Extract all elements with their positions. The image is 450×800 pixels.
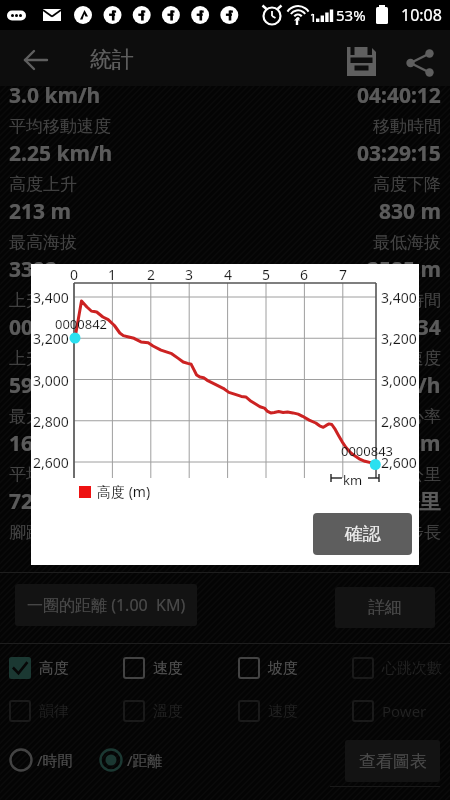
staticText: 02:13:34: [357, 313, 441, 342]
staticText: 59 m/h: [9, 371, 82, 400]
staticText: 查看圖表: [359, 751, 427, 772]
staticText: 平均移動速度: [9, 116, 111, 137]
staticText: 7.86 公里: [351, 487, 441, 516]
button[interactable]: 速度: [238, 700, 352, 722]
staticText: 詳細: [368, 597, 402, 618]
staticText: 10:08: [401, 4, 442, 26]
staticText: 最高海拔: [9, 232, 77, 253]
staticText: 2: [147, 265, 156, 284]
staticText: 韻律: [39, 702, 69, 721]
staticText: 5: [262, 265, 271, 284]
staticText: 00:41:20: [9, 313, 93, 342]
staticText: 平均步頻: [9, 464, 77, 485]
button[interactable]: Back: [14, 38, 58, 82]
staticText: 坡度: [268, 659, 298, 678]
staticText: 統計: [90, 46, 134, 74]
button[interactable]: Share: [398, 41, 442, 85]
staticText: 213 m: [9, 197, 71, 226]
staticText: 總公里: [390, 464, 441, 485]
staticText: 確認: [345, 523, 381, 546]
staticText: 121 bpm: [352, 429, 441, 458]
staticText: 6: [300, 265, 309, 284]
staticText: 0000843: [341, 442, 394, 460]
staticText: 上升速度: [9, 348, 77, 369]
button[interactable]: 速度: [123, 657, 238, 679]
staticText: 7: [339, 265, 348, 284]
staticText: 3,200: [381, 329, 417, 348]
staticText: 2585 m: [367, 255, 441, 284]
staticText: 10:08: [401, 4, 442, 26]
staticText: 高度: [39, 659, 69, 678]
staticText: 2,600: [33, 453, 69, 472]
staticText: 2.25 km/h: [9, 139, 113, 168]
button[interactable]: 確認: [313, 513, 412, 555]
staticText: 3,000: [33, 371, 69, 390]
staticText: 移動時間: [373, 116, 441, 137]
button[interactable]: 心跳次數: [352, 657, 450, 679]
button[interactable]: /時間: [9, 748, 73, 772]
staticText: 速度: [153, 659, 183, 678]
staticText: /時間: [37, 750, 73, 770]
staticText: 4: [224, 265, 233, 284]
staticText: 3,400: [381, 288, 417, 307]
button[interactable]: Power: [352, 700, 450, 722]
staticText: 一圈的距離 (1.00 KM): [27, 594, 186, 616]
button[interactable]: 查看圖表: [345, 740, 440, 782]
button[interactable]: 一圈的距離 (1.00 KM): [15, 584, 197, 626]
staticText: 3.0 km/h: [9, 86, 101, 110]
staticText: /距離: [127, 750, 163, 770]
button[interactable]: /距離: [99, 748, 163, 772]
button[interactable]: 韻律: [9, 700, 123, 722]
staticText: 390 m/h: [356, 371, 441, 400]
staticText: 腳踏頻率: [9, 522, 77, 543]
staticText: km: [343, 471, 363, 489]
staticText: 2,600: [381, 453, 417, 472]
staticText: 高度上升: [9, 174, 77, 195]
staticText: 0: [70, 265, 79, 284]
button[interactable]: 高度: [9, 657, 123, 679]
staticText: 高度 (m): [97, 482, 151, 501]
button[interactable]: Save: [339, 39, 383, 83]
staticText: 高度下降: [373, 174, 441, 195]
staticText: 最大心率: [9, 406, 77, 427]
staticText: 163 bpm: [9, 429, 98, 458]
staticText: 04:40:12: [357, 86, 441, 110]
button[interactable]: 詳細: [335, 587, 435, 628]
staticText: 1: [108, 265, 117, 284]
staticText: 3: [185, 265, 194, 284]
staticText: 53%: [336, 5, 366, 25]
staticText: Power: [382, 701, 427, 721]
staticText: 53%: [336, 5, 366, 25]
staticText: 平均步長: [373, 522, 441, 543]
staticText: 最低海拔: [373, 232, 441, 253]
button[interactable]: 坡度: [238, 657, 352, 679]
staticText: 830 m: [379, 197, 441, 226]
button[interactable]: 溫度: [123, 700, 238, 722]
staticText: 3,200: [33, 329, 69, 348]
staticText: 03:29:15: [357, 139, 441, 168]
staticText: 溫度: [153, 702, 183, 721]
staticText: 上升時間: [9, 290, 77, 311]
staticText: 0000842: [55, 315, 108, 333]
staticText: 3,400: [33, 288, 69, 307]
staticText: 速度: [268, 702, 298, 721]
staticText: 下降時間: [373, 290, 441, 311]
staticText: 2,800: [381, 412, 417, 431]
staticText: 72 spm: [9, 487, 83, 516]
staticText: 平均心率: [373, 406, 441, 427]
staticText: 下降速度: [373, 348, 441, 369]
staticText: 3392 m: [9, 255, 83, 284]
staticText: 心跳次數: [382, 659, 442, 678]
staticText: 2,800: [33, 412, 69, 431]
staticText: 3,000: [381, 371, 417, 390]
